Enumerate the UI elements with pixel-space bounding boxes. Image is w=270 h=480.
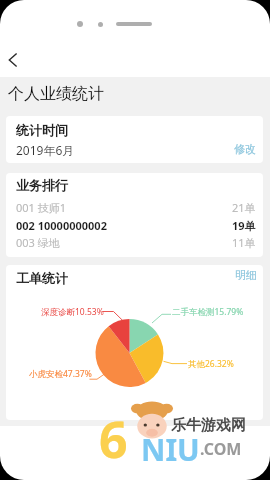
staticText: 明细 [235,268,257,282]
staticText: 业务排行 [16,177,68,193]
staticText: 小虎安检47.37% [29,368,92,380]
staticText: 乐牛游戏网 [171,416,246,435]
button[interactable]: 明细 [235,268,257,282]
staticText: 19单 [232,218,256,233]
staticText: 11单 [232,235,256,250]
button[interactable]: 修改 [234,142,256,156]
staticText: 2019年6月 [16,142,75,158]
staticText: 工单统计 [16,270,68,286]
staticText: .COM [200,438,242,460]
staticText: 其他26.32% [188,358,234,370]
button[interactable]: 003 绿地 [6,234,263,250]
button[interactable]: 001 技师1 [6,199,263,215]
staticText: 修改 [234,142,256,156]
button[interactable]: Back [2,48,26,72]
staticText: 003 绿地 [16,235,60,250]
staticText: 001 技师1 [16,200,67,215]
staticText: 个人业绩统计 [8,84,104,104]
staticText: 6 [99,405,128,473]
staticText: NIU [141,429,200,470]
staticText: 深度诊断10.53% [41,306,104,318]
button[interactable]: 002 10000000002 [6,217,263,233]
staticText: 二手车检测15.79% [172,306,244,318]
staticText: 002 10000000002 [16,218,107,233]
staticText: 21单 [232,200,256,215]
button[interactable]: 统计时间 [6,116,263,163]
staticText: 统计时间 [16,122,68,138]
